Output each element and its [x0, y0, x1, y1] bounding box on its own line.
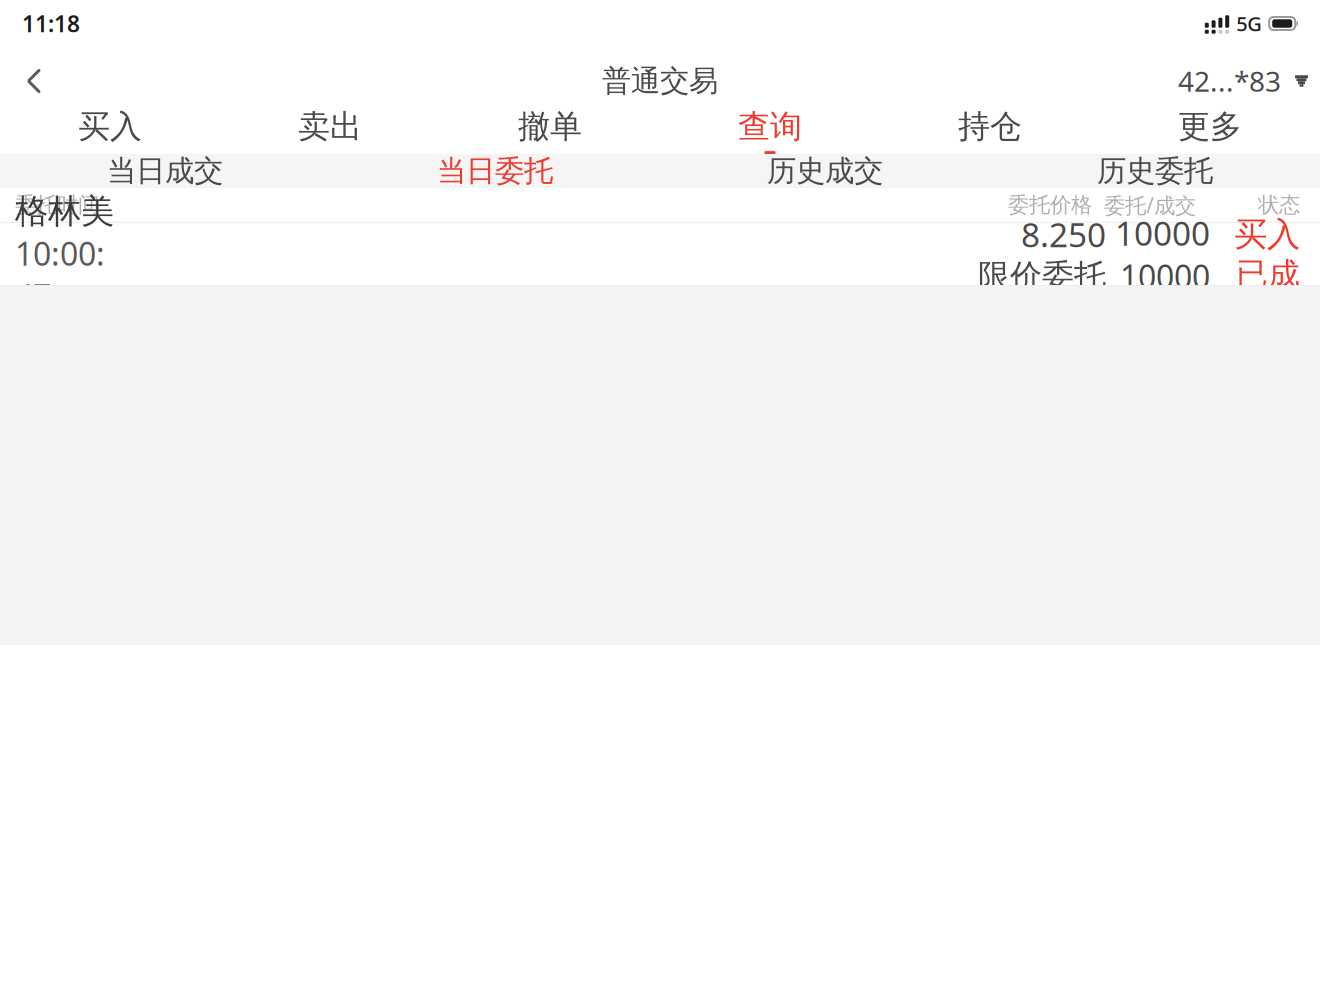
staticText: 8.250 — [1021, 212, 1106, 256]
button[interactable]: 持仓 — [880, 99, 1100, 162]
staticText: 10000 — [1115, 211, 1210, 255]
button[interactable]: 买入 — [0, 99, 220, 162]
button[interactable]: 历史成交 — [660, 144, 990, 198]
button[interactable]: 撤单 — [440, 99, 660, 162]
staticText: 当日委托 — [437, 153, 553, 189]
button[interactable]: 查询 — [660, 99, 880, 162]
button[interactable]: Back — [12, 59, 56, 103]
button[interactable]: 42...*83 — [1178, 54, 1308, 108]
staticText: 委托价格 — [1008, 192, 1092, 218]
button[interactable]: 历史委托 — [990, 144, 1320, 198]
staticText: 10000 — [1120, 255, 1210, 297]
staticText: 格林美 — [15, 191, 114, 232]
staticText: 限价委托 — [978, 256, 1106, 296]
button[interactable]: 格林美 — [0, 223, 1320, 285]
staticText: 撤单 — [518, 107, 582, 146]
staticText: 已成 — [1236, 255, 1300, 294]
staticText: 状态 — [1258, 192, 1300, 218]
staticText: 买入 — [1234, 214, 1300, 255]
staticText: 10:00:47 — [15, 232, 105, 317]
staticText: 卖出 — [298, 107, 362, 146]
button[interactable]: 卖出 — [220, 99, 440, 162]
staticText: 查询 — [738, 107, 802, 146]
button[interactable]: 当日成交 — [0, 144, 330, 198]
staticText: 历史成交 — [767, 153, 883, 189]
staticText: 当日成交 — [107, 153, 223, 189]
button[interactable]: 更多 — [1100, 99, 1320, 162]
staticText: 委托/成交 — [1104, 191, 1196, 219]
staticText: 普通交易 — [602, 63, 718, 99]
staticText: 持仓 — [958, 107, 1022, 146]
staticText: 买入 — [78, 107, 142, 146]
button[interactable]: 当日委托 — [330, 144, 660, 198]
staticText: 历史委托 — [1097, 153, 1213, 189]
staticText: 42...*83 — [1178, 62, 1281, 100]
staticText: 5G — [1236, 10, 1262, 37]
staticText: 委托时间 — [15, 192, 99, 218]
staticText: 11:18 — [22, 8, 80, 38]
staticText: 更多 — [1178, 107, 1242, 146]
